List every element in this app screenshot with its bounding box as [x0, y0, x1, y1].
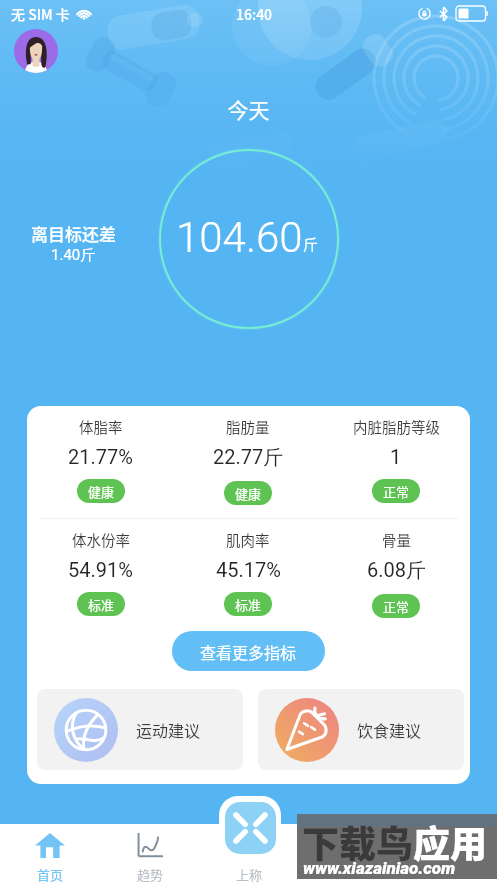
- button[interactable]: 运动建议: [37, 689, 243, 770]
- staticText: 趋势: [137, 865, 164, 883]
- staticText: 斤: [303, 233, 319, 255]
- button[interactable]: 体脂率: [27, 416, 174, 513]
- staticText: 正常: [383, 482, 410, 501]
- staticText: 健康: [88, 482, 115, 501]
- staticText: www.xiazainiao.com: [303, 858, 456, 878]
- button[interactable]: 上称: [200, 824, 299, 883]
- staticText: 54.91%: [68, 558, 133, 581]
- staticText: 6.08斤: [367, 558, 426, 583]
- staticText: 标准: [88, 595, 115, 614]
- staticText: 1.40斤: [51, 246, 96, 265]
- staticText: 肌肉率: [226, 529, 270, 550]
- staticText: 查看更多指标: [200, 640, 297, 663]
- button[interactable]: [398, 824, 497, 883]
- button[interactable]: 趋势: [100, 824, 200, 883]
- staticText: 上称: [236, 865, 263, 883]
- staticText: 首页: [37, 865, 64, 883]
- button[interactable]: 饮食建议: [258, 689, 464, 770]
- staticText: 体脂率: [79, 416, 123, 437]
- button[interactable]: 首页: [0, 824, 100, 883]
- button[interactable]: Weigh in, open scale: [225, 802, 276, 854]
- staticText: 运动建议: [136, 718, 201, 741]
- button[interactable]: 肌肉率: [174, 529, 322, 626]
- staticText: 正常: [383, 597, 410, 616]
- staticText: 今天: [0, 94, 497, 124]
- button[interactable]: 查看更多指标: [172, 631, 325, 671]
- staticText: 骨量: [382, 529, 411, 550]
- staticText: 内脏脂肪等级: [353, 416, 440, 437]
- staticText: 标准: [235, 595, 262, 614]
- button[interactable]: Profile: [14, 29, 58, 73]
- staticText: 104.60: [176, 213, 303, 262]
- button[interactable]: [299, 824, 398, 883]
- staticText: 脂肪量: [226, 416, 270, 437]
- staticText: 应用: [413, 815, 487, 869]
- staticText: 无 SIM 卡: [11, 4, 70, 24]
- staticText: 16:40: [236, 4, 273, 24]
- staticText: 45.17%: [216, 558, 281, 581]
- staticText: 饮食建议: [357, 718, 422, 741]
- staticText: 体水份率: [72, 529, 130, 550]
- button[interactable]: 骨量: [322, 529, 470, 626]
- staticText: 21.77%: [68, 445, 133, 468]
- staticText: 下载鸟: [302, 815, 413, 869]
- staticText: 健康: [235, 484, 262, 503]
- staticText: 22.77斤: [213, 445, 284, 470]
- button[interactable]: 体水份率: [27, 529, 174, 626]
- staticText: 1: [390, 445, 402, 468]
- button[interactable]: 内脏脂肪等级: [322, 416, 470, 513]
- button[interactable]: 脂肪量: [174, 416, 322, 513]
- staticText: 离目标还差: [31, 221, 116, 246]
